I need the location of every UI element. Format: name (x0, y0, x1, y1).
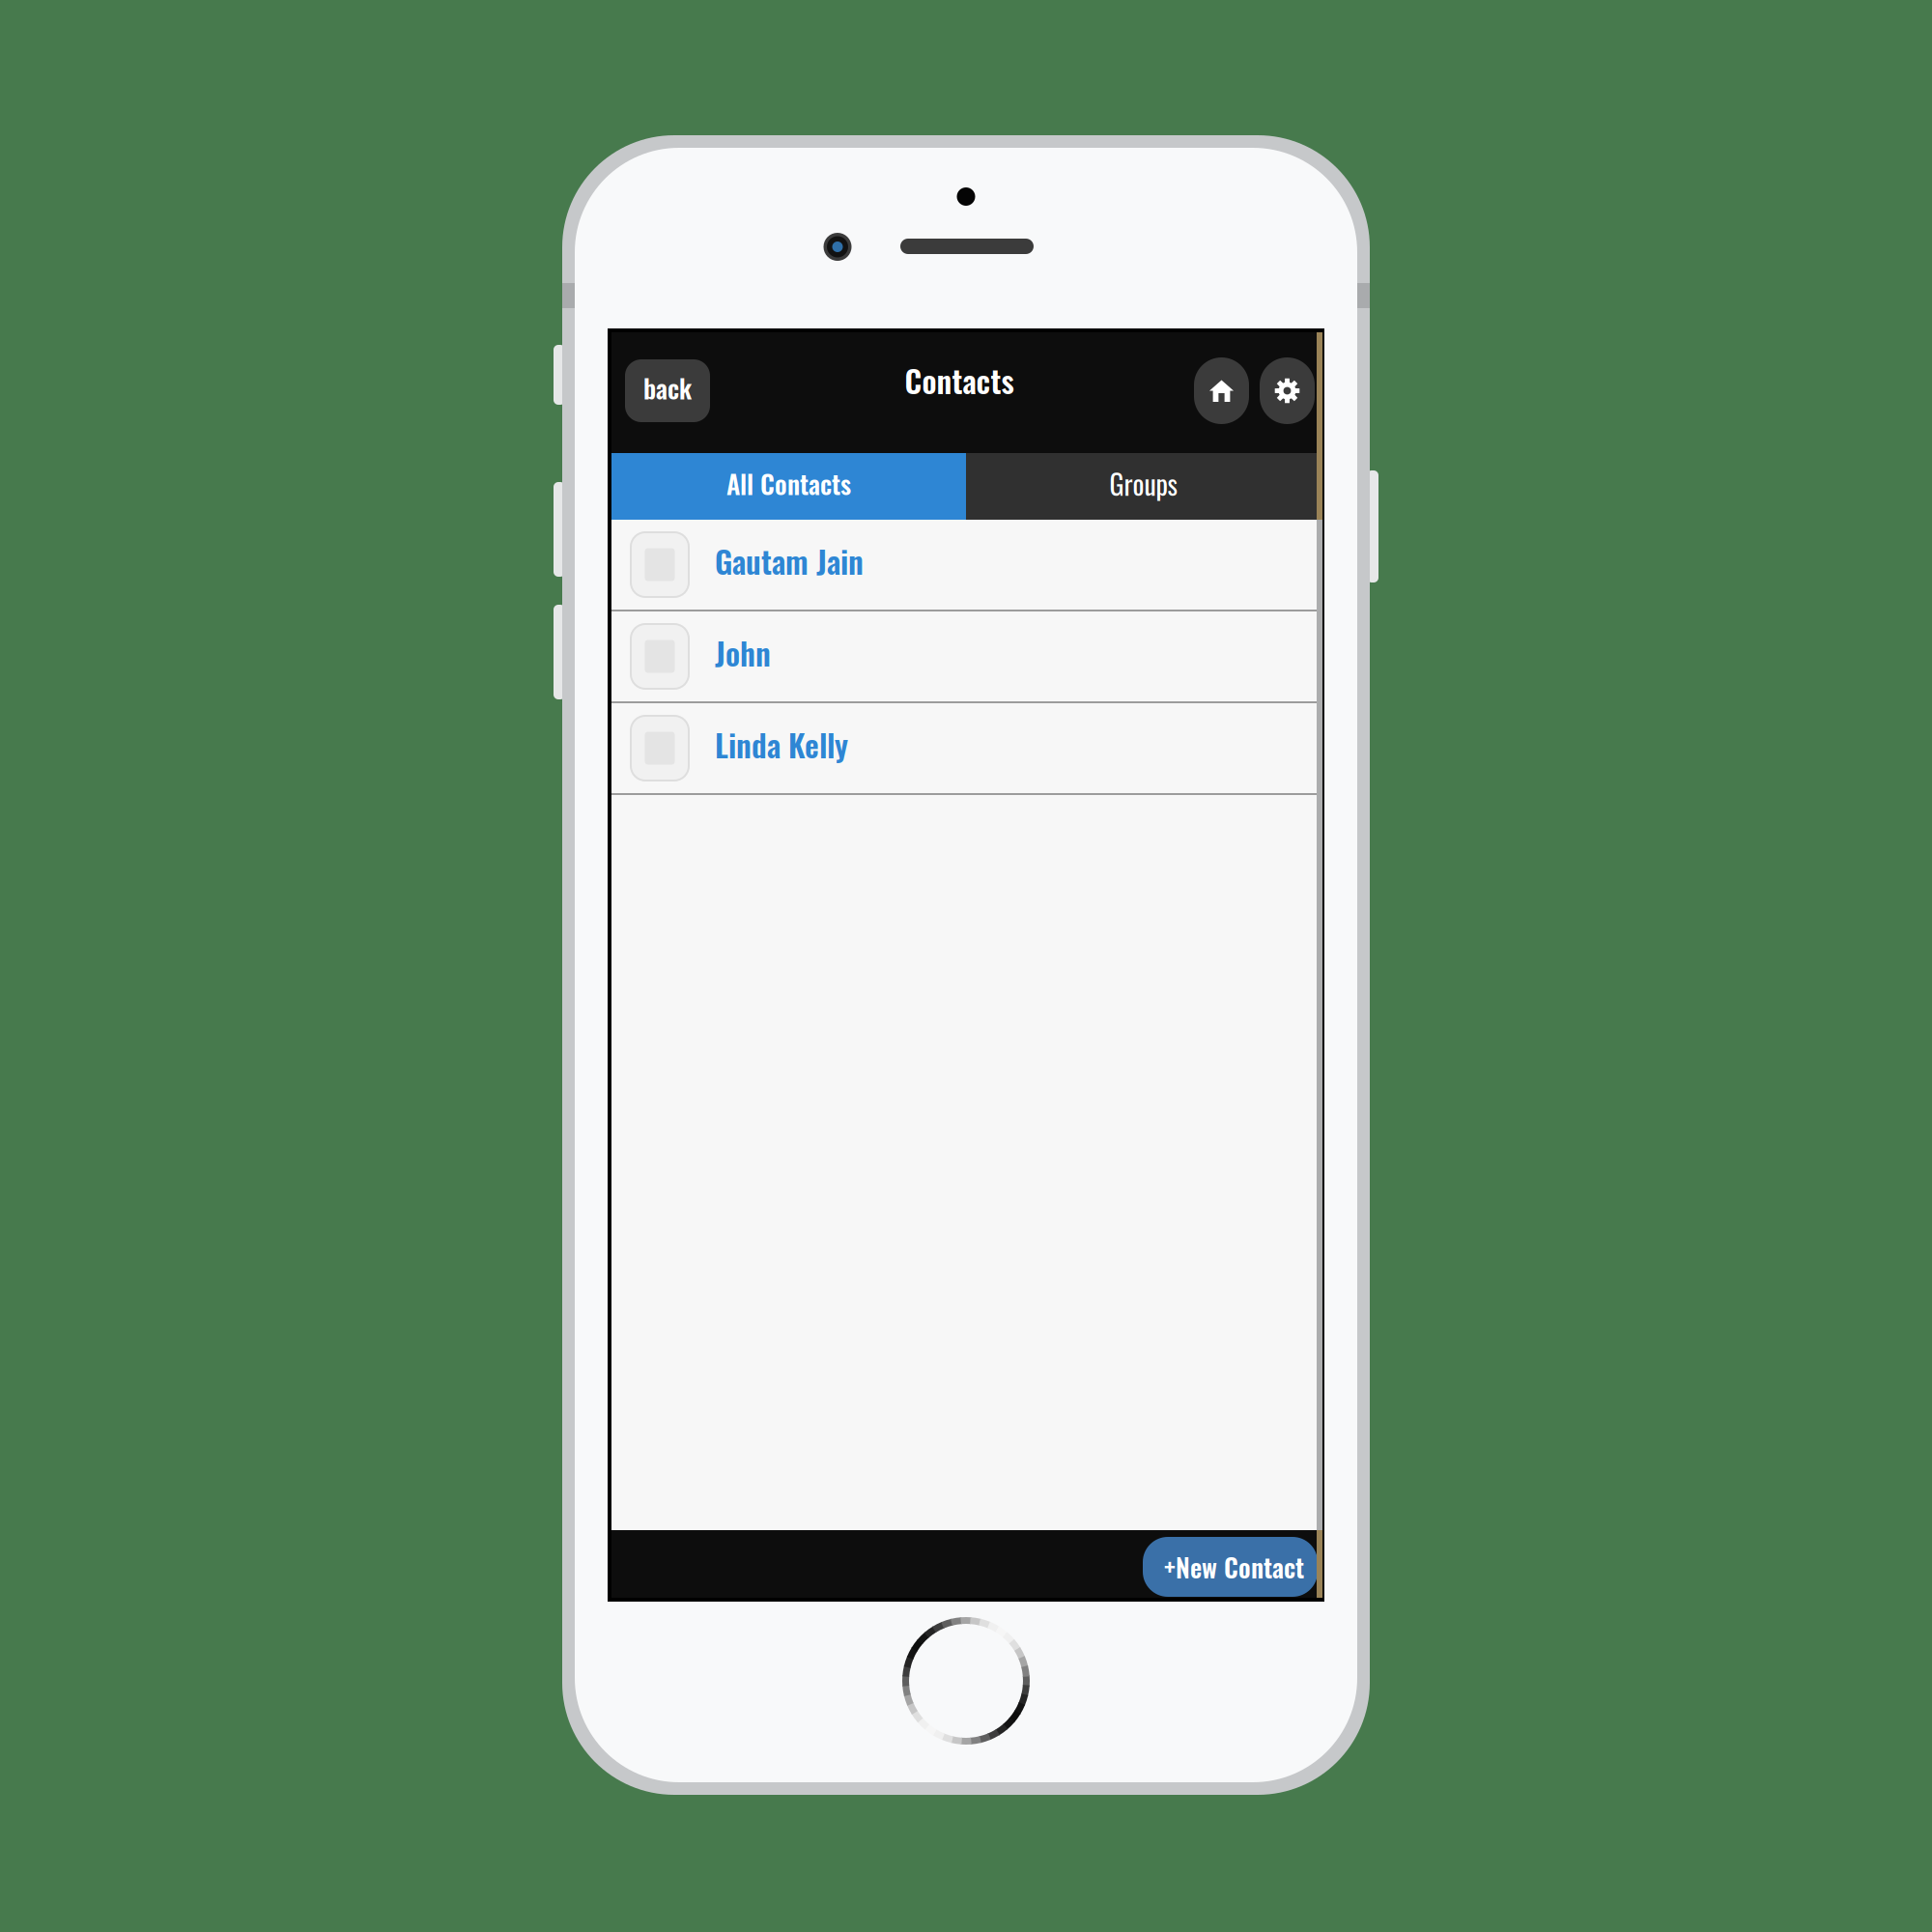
button[interactable]: back (625, 359, 710, 422)
button[interactable]: Gautam Jain (611, 520, 1321, 611)
staticText: Contacts (905, 357, 1014, 403)
staticText: Linda Kelly (715, 721, 848, 767)
button[interactable]: Home (1194, 357, 1249, 424)
staticText: All Contacts (726, 464, 851, 503)
button[interactable]: John (611, 611, 1321, 703)
button[interactable]: All Contacts (611, 453, 966, 520)
staticText: back (643, 369, 692, 407)
button[interactable]: Groups (966, 453, 1321, 520)
staticText: +New Contact (1164, 1548, 1304, 1586)
staticText: Gautam Jain (715, 538, 864, 584)
staticText: Groups (1109, 463, 1177, 504)
button[interactable]: Settings (1260, 357, 1315, 424)
staticText: John (715, 630, 771, 675)
button[interactable]: +New Contact (1143, 1537, 1318, 1597)
button[interactable]: Linda Kelly (611, 703, 1321, 795)
